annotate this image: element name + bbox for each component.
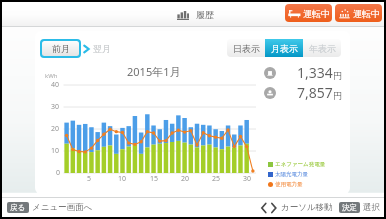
button[interactable]: 日表示	[227, 39, 265, 57]
staticText: kWh	[45, 72, 58, 80]
staticText: 2015年1月	[127, 64, 181, 79]
staticText: メニュー画面へ	[32, 202, 93, 213]
staticText: 戻る	[10, 203, 26, 212]
staticText: 0	[56, 168, 61, 178]
button[interactable]: 年表示	[303, 39, 341, 57]
staticText: 円	[333, 70, 342, 81]
staticText: 20	[181, 174, 190, 184]
other: カーソル移動	[261, 203, 278, 213]
staticText: 履歴	[196, 9, 214, 20]
staticText: 太陽光電力量	[275, 171, 308, 178]
staticText: 1,334	[297, 63, 333, 82]
staticText: 7,857	[297, 83, 333, 102]
button[interactable]: 床暖房 運転中	[335, 4, 382, 22]
staticText: 運転中	[303, 8, 329, 19]
staticText: 20	[51, 124, 60, 134]
button[interactable]: 翌月	[83, 43, 111, 54]
button[interactable]: 戻る	[7, 202, 29, 213]
button[interactable]: 給湯 運転中	[285, 4, 332, 22]
button[interactable]: 月表示	[265, 39, 303, 57]
staticText: エネファーム発電量	[275, 161, 326, 168]
button[interactable]: 前月	[40, 39, 81, 58]
staticText: 円	[333, 90, 342, 101]
staticText: 5	[87, 174, 92, 184]
staticText: 運転中	[353, 8, 379, 19]
staticText: 30	[51, 102, 60, 112]
button[interactable]: 決定	[339, 202, 360, 213]
staticText: 日表示	[233, 43, 260, 54]
staticText: 年表示	[309, 43, 336, 54]
staticText: 翌月	[93, 43, 111, 54]
staticText: 10	[51, 146, 60, 156]
staticText: 前月	[52, 43, 70, 54]
staticText: カーソル移動	[281, 202, 333, 213]
staticText: 月表示	[271, 43, 298, 54]
staticText: 使用電力量	[275, 181, 303, 188]
staticText: 決定	[342, 203, 357, 212]
staticText: 15	[150, 174, 159, 184]
staticText: 40	[51, 80, 60, 90]
staticText: 選択	[363, 202, 380, 213]
staticText: 30	[243, 174, 252, 184]
staticText: 10	[118, 174, 127, 184]
staticText: 25	[212, 174, 221, 184]
